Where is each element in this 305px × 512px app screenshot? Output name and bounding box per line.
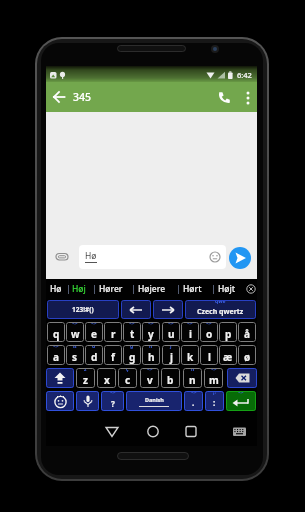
button[interactable]: Hørt (183, 283, 202, 295)
button[interactable] (79, 245, 226, 269)
staticText: <> (206, 322, 212, 327)
button[interactable] (229, 247, 251, 269)
staticText: Højt (218, 283, 236, 295)
staticText: | (131, 283, 136, 295)
staticText: r (111, 327, 116, 341)
button[interactable]: <> (204, 368, 223, 388)
button[interactable]: Hø (50, 283, 62, 295)
staticText: <> (187, 322, 193, 327)
staticText: j (170, 350, 173, 364)
staticText: đ (92, 345, 96, 350)
button[interactable]: ĝ (123, 345, 141, 365)
staticText: ž (84, 368, 87, 373)
button[interactable] (46, 368, 74, 388)
button[interactable] (50, 88, 68, 106)
staticText: <> (211, 368, 217, 373)
button[interactable]: Høj (72, 283, 86, 295)
button[interactable]: æ (219, 345, 237, 365)
button[interactable]: Højt (218, 283, 236, 295)
button[interactable]: ç (118, 368, 137, 388)
staticText: n (189, 373, 196, 387)
staticText: d (91, 350, 98, 364)
staticText: ç (126, 368, 129, 373)
button[interactable] (218, 91, 231, 104)
staticText: Høj (72, 283, 86, 295)
staticText: | (176, 283, 181, 295)
button[interactable]: å (238, 322, 256, 342)
staticText: q (53, 327, 60, 341)
button[interactable]: ñ (183, 368, 202, 388)
button[interactable] (207, 249, 223, 265)
staticText: Højere (138, 283, 166, 295)
staticText: Hører (99, 283, 123, 295)
button[interactable]: đ (85, 345, 103, 365)
staticText: Hø (50, 283, 62, 295)
button[interactable]: f (104, 345, 122, 365)
button[interactable]: <> (200, 322, 218, 342)
staticText: y (148, 327, 154, 341)
staticText: Czech qwertz (197, 307, 244, 317)
button[interactable] (53, 247, 73, 267)
button[interactable] (153, 300, 183, 319)
button[interactable] (179, 423, 203, 440)
button[interactable]: p (219, 322, 237, 342)
staticText: <> (91, 322, 97, 327)
button[interactable]: <> (66, 322, 84, 342)
button[interactable]: Hører (99, 283, 123, 295)
staticText: ? (111, 398, 115, 409)
staticText: e (91, 327, 97, 341)
button[interactable]: <> (47, 345, 65, 365)
button[interactable]: <> (184, 391, 203, 411)
button[interactable] (227, 368, 257, 388)
button[interactable]: ¡! (205, 391, 224, 411)
button[interactable]: l (200, 345, 218, 365)
button[interactable]: ž (76, 368, 95, 388)
staticText: Hø (85, 250, 97, 262)
button[interactable] (231, 425, 249, 438)
button[interactable]: b (161, 368, 180, 388)
staticText: ĝ (130, 345, 134, 350)
button[interactable]: <> (181, 322, 199, 342)
button[interactable]: <> (101, 391, 124, 411)
staticText: Danish (145, 396, 164, 403)
staticText: w (71, 327, 80, 341)
button[interactable]: <> (85, 322, 103, 342)
button[interactable] (141, 423, 165, 440)
button[interactable] (46, 391, 74, 411)
button[interactable]: Danish (126, 391, 182, 411)
button[interactable] (121, 300, 151, 319)
button[interactable]: ø (238, 345, 256, 365)
button[interactable] (100, 424, 124, 440)
staticText: v (147, 373, 153, 387)
staticText: a (53, 350, 59, 364)
button[interactable]: qwe (185, 300, 256, 319)
staticText: ø (244, 350, 251, 364)
button[interactable]: <> (140, 368, 159, 388)
staticText: ¡! (213, 391, 216, 396)
button[interactable]: <> (142, 322, 160, 342)
staticText: qwe (215, 300, 226, 305)
button[interactable] (242, 90, 254, 106)
button[interactable]: <> (226, 391, 256, 411)
staticText: <> (72, 322, 78, 327)
staticText: . (192, 397, 195, 408)
button[interactable]: q (47, 322, 65, 342)
staticText: ĵ (170, 345, 172, 350)
staticText: f (111, 350, 115, 364)
button[interactable]: <> (162, 322, 180, 342)
staticText: å (244, 327, 250, 341)
staticText: h (148, 350, 155, 364)
button[interactable]: ĥ (142, 345, 160, 365)
button[interactable]: 123!#() (47, 300, 119, 319)
button[interactable]: x (97, 368, 116, 388)
button[interactable] (76, 391, 99, 411)
button[interactable]: Højere (138, 283, 166, 295)
staticText: c (125, 373, 131, 387)
button[interactable] (246, 284, 256, 294)
button[interactable]: <> (123, 322, 141, 342)
button[interactable]: ĵ (162, 345, 180, 365)
button[interactable]: k (181, 345, 199, 365)
staticText: <> (191, 391, 197, 396)
button[interactable]: r (104, 322, 122, 342)
button[interactable]: ß (66, 345, 84, 365)
